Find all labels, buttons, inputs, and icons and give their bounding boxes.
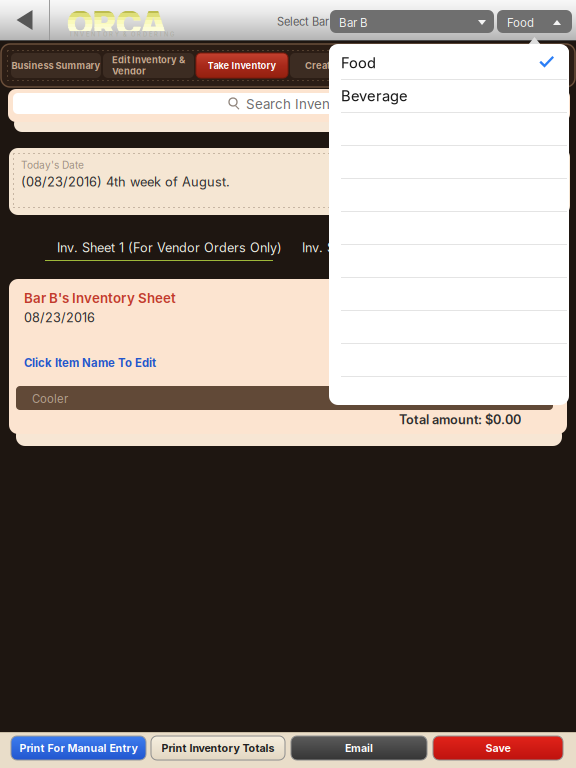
staticText: Business Summary bbox=[11, 60, 100, 71]
button[interactable]: Print Inventory Totals bbox=[151, 736, 285, 760]
staticText: Inv. Sheet 1 (For Vendor Orders Only) bbox=[57, 240, 282, 255]
button[interactable]: Save bbox=[433, 736, 563, 760]
staticText: Beverage bbox=[341, 87, 408, 105]
staticText: ORCA bbox=[67, 3, 167, 45]
button[interactable]: Create Order bbox=[290, 53, 380, 78]
button[interactable]: Cooler bbox=[16, 386, 553, 410]
staticText: Search Inventory Item bbox=[246, 96, 386, 112]
staticText: ORCA bbox=[67, 3, 167, 45]
button[interactable]: Print For Manual Entry bbox=[11, 736, 146, 760]
button[interactable]: Inv. Sheet 1 (For Vendor Orders Only) bbox=[45, 240, 273, 262]
staticText: ORCA bbox=[67, 3, 167, 45]
staticText: Bar B bbox=[339, 16, 368, 30]
staticText: Total amount: $0.00 bbox=[399, 412, 521, 427]
button[interactable]: Click Item Name To Edit bbox=[24, 356, 156, 370]
button[interactable]: Inv. Sheet 2 bbox=[302, 240, 376, 262]
staticText: (08/23/2016) 4th week of August. bbox=[21, 174, 230, 189]
staticText: ORCA bbox=[67, 3, 167, 45]
staticText: 08/23/2016 bbox=[24, 310, 95, 325]
button[interactable]: Edit Inventory & Vendor bbox=[103, 53, 194, 78]
staticText: Save bbox=[485, 741, 510, 754]
staticText: Inv. Sheet 2 bbox=[302, 240, 372, 255]
staticText: Email bbox=[345, 741, 373, 754]
staticText: Create Order bbox=[305, 60, 365, 71]
staticText: I N V E N T O R Y & O R D E R I N G bbox=[70, 31, 174, 38]
button[interactable]: Food bbox=[497, 10, 572, 33]
button[interactable]: Food bbox=[329, 46, 569, 79]
button[interactable]: Take Inventory bbox=[196, 53, 288, 78]
staticText: Click Item Name To Edit bbox=[24, 356, 156, 370]
staticText: ORCA bbox=[67, 3, 167, 45]
staticText: ORCA bbox=[67, 3, 167, 45]
staticText: Bar B's Inventory Sheet bbox=[24, 290, 176, 306]
staticText: Today's Date bbox=[21, 159, 84, 171]
button[interactable]: Business Summary bbox=[11, 53, 101, 78]
staticText: Print Inventory Totals bbox=[161, 741, 274, 754]
staticText: ORCA bbox=[67, 3, 167, 45]
staticText: Select Bar bbox=[277, 15, 329, 28]
staticText: Cooler bbox=[32, 392, 68, 406]
staticText: ORCA bbox=[67, 3, 167, 45]
button[interactable]: Beverage bbox=[329, 79, 569, 112]
staticText: Edit Inventory & Vendor bbox=[112, 54, 185, 77]
staticText: Food bbox=[507, 16, 534, 30]
button[interactable]: Email bbox=[291, 736, 427, 760]
button[interactable]: Back bbox=[0, 0, 49, 40]
button[interactable]: Bar B bbox=[330, 10, 494, 33]
staticText: Print For Manual Entry bbox=[19, 741, 137, 754]
staticText: Food bbox=[341, 54, 376, 72]
staticText: Take Inventory bbox=[207, 60, 276, 71]
